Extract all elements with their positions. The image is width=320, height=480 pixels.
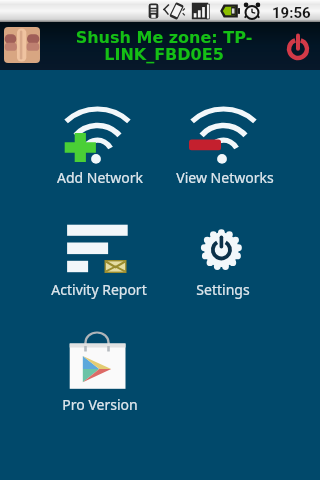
button[interactable] [50,208,146,308]
staticText: Add Network [40,168,160,187]
button[interactable] [176,208,272,308]
button[interactable] [50,324,146,424]
button[interactable] [50,90,146,190]
staticText: Settings [163,280,283,299]
staticText: Pro Version [40,395,160,414]
staticText: Activity Report [39,280,159,299]
staticText: View Networks [165,168,285,187]
button[interactable] [176,90,272,190]
staticText: Shush Me zone: TP- LINK_FBD0E5 [49,28,279,64]
staticText: 19:56 [272,4,311,22]
button[interactable]: App icon [4,27,40,63]
button[interactable]: Power [282,33,314,65]
